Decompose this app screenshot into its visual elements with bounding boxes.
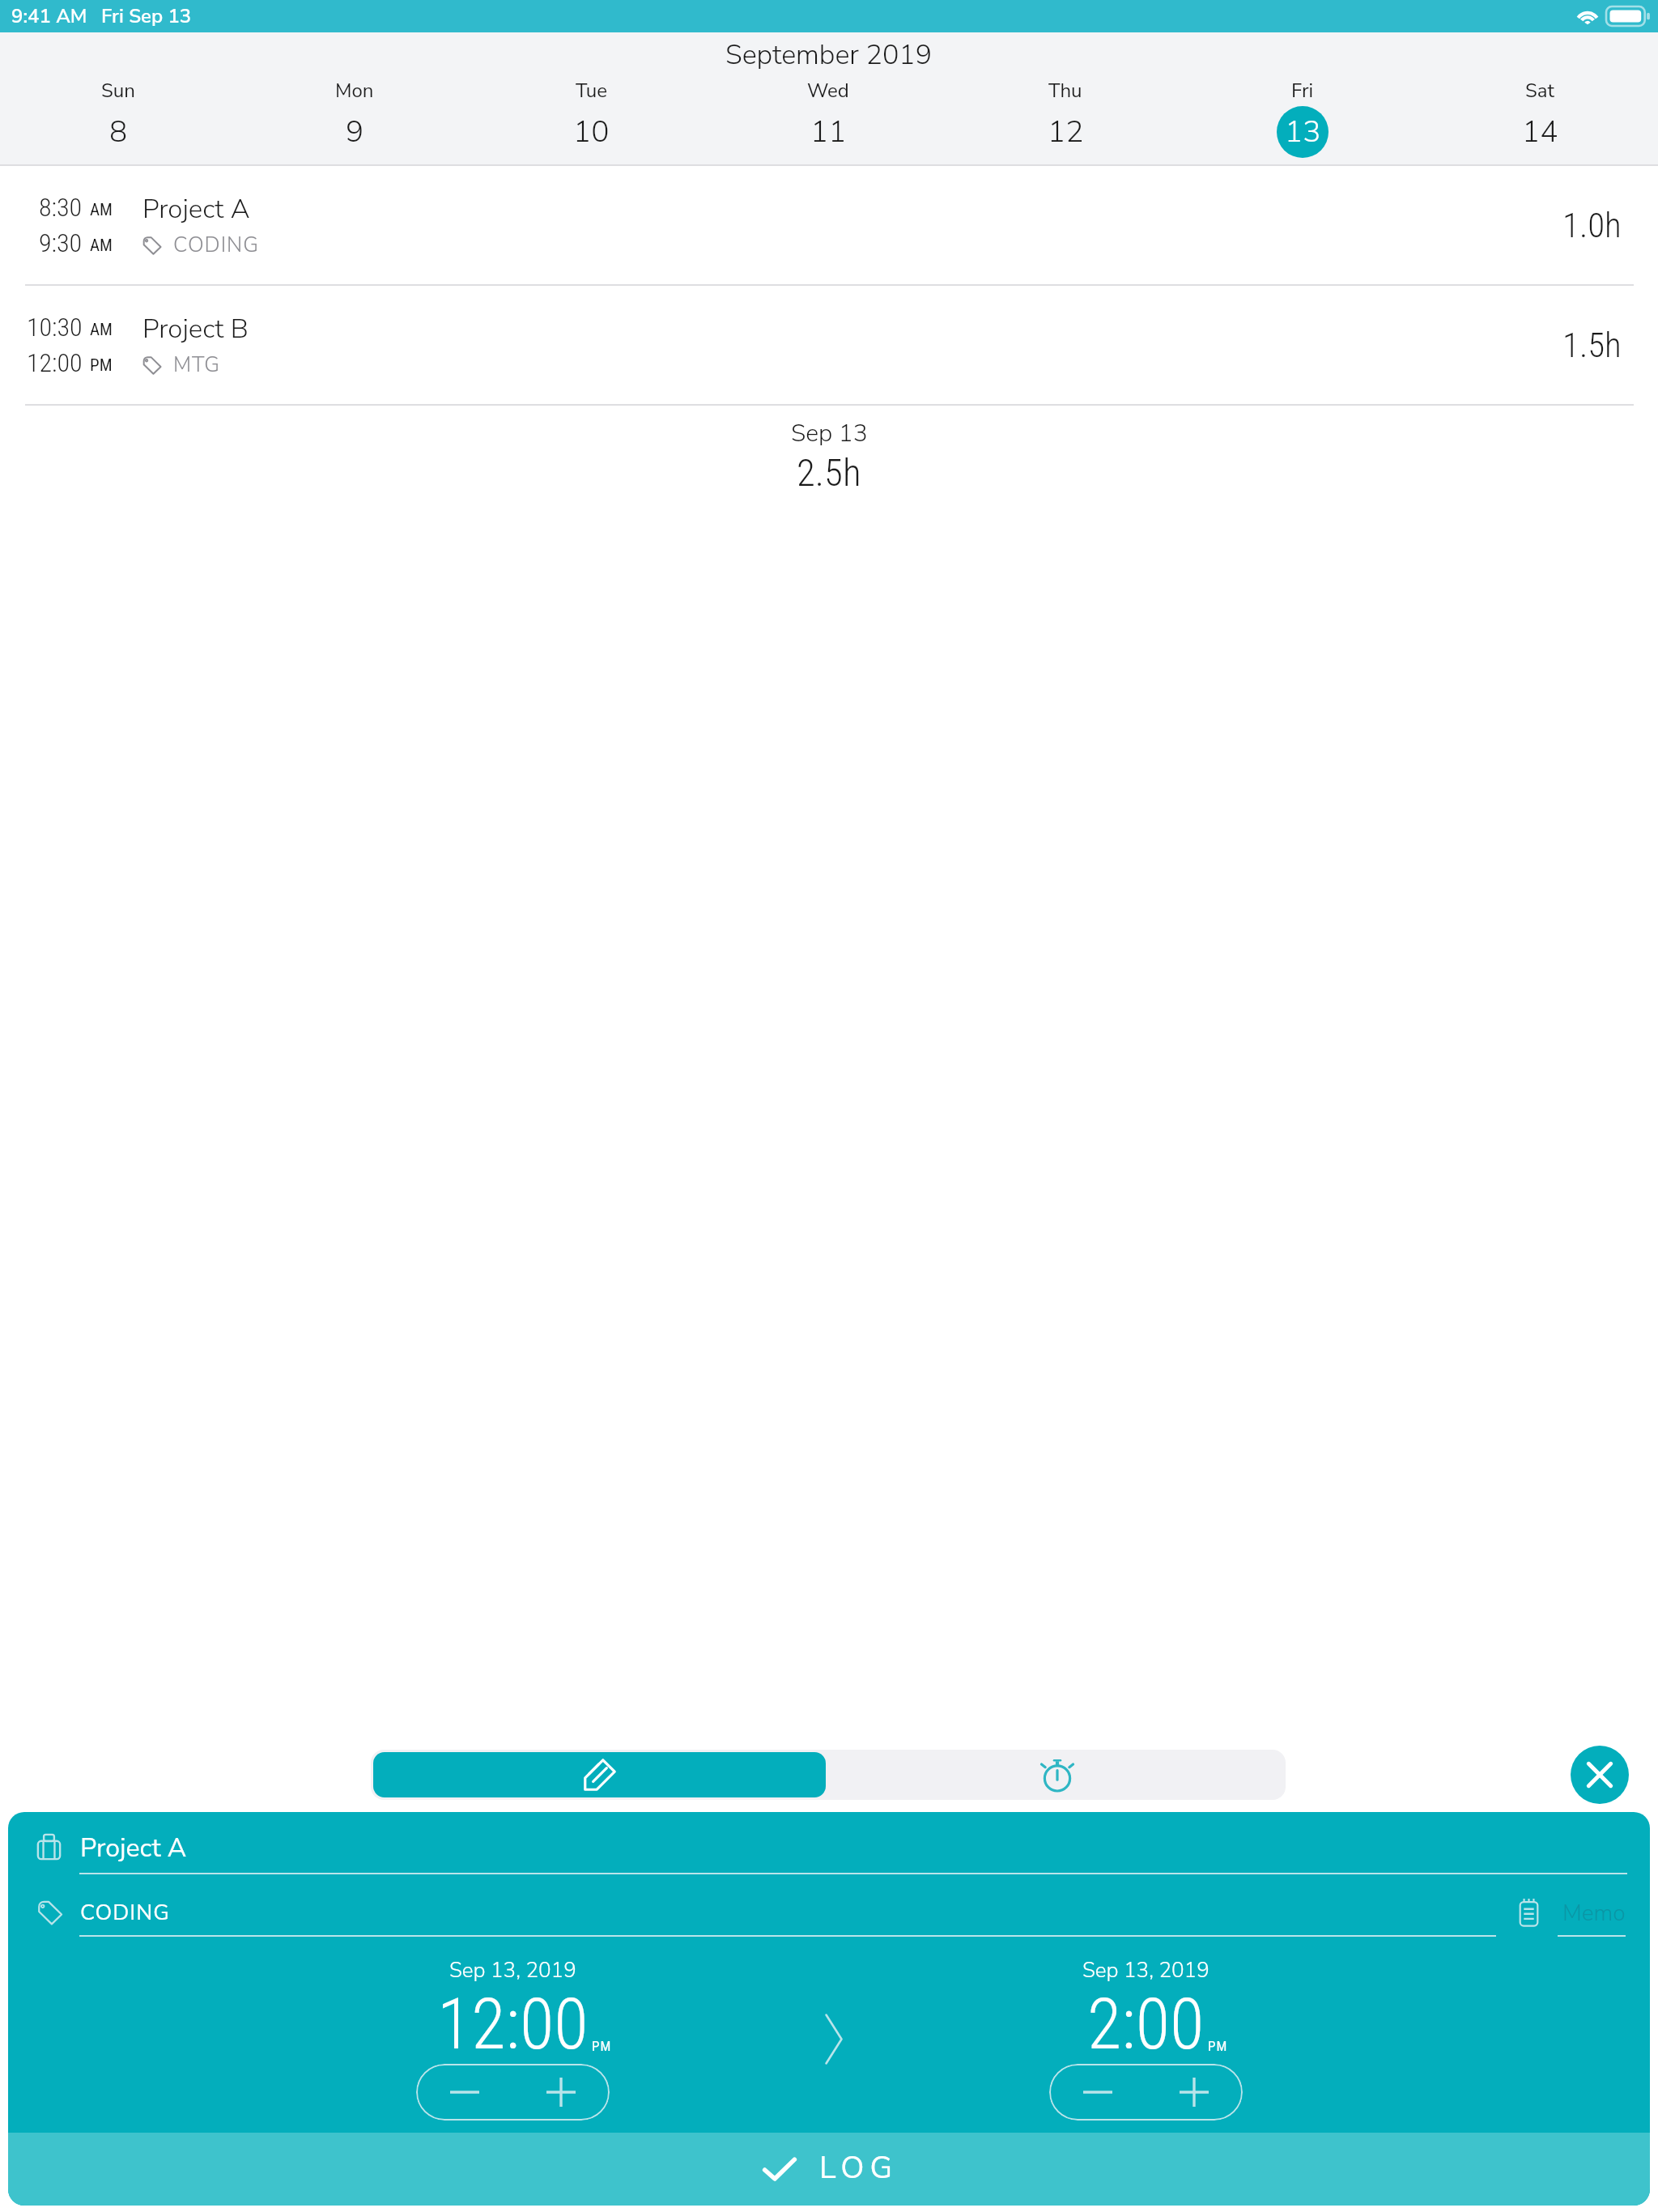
button[interactable]: Wed — [709, 78, 946, 158]
staticText: September 2019 — [725, 36, 933, 74]
button[interactable]: Decrease time — [1049, 2064, 1146, 2121]
staticText: Sep 13 — [791, 417, 868, 450]
staticText: Project A — [142, 191, 250, 228]
staticText: 10 — [573, 112, 610, 152]
staticText: PM — [1208, 2038, 1228, 2054]
button[interactable]: CODING — [37, 1874, 1518, 1937]
button[interactable]: Thu — [946, 78, 1184, 158]
button[interactable]: Project A — [37, 1812, 1627, 1874]
staticText: 8 — [109, 112, 128, 152]
staticText: 9:30 — [39, 228, 83, 258]
button[interactable]: Increase time — [1146, 2064, 1243, 2121]
button[interactable]: Close — [1571, 1746, 1629, 1804]
staticText: 9:41 AM — [11, 3, 87, 30]
staticText: 9 — [346, 112, 364, 152]
staticText: PM — [592, 2038, 612, 2054]
staticText: Project A — [80, 1831, 187, 1866]
staticText: Tue — [576, 78, 607, 104]
staticText: CODING — [173, 231, 259, 259]
staticText: Fri — [1291, 78, 1314, 104]
button[interactable]: Decrease time — [416, 2064, 512, 2121]
staticText: Sep 13, 2019 — [449, 1956, 576, 1984]
button[interactable]: Manual entry — [373, 1752, 826, 1797]
staticText: Thu — [1048, 78, 1082, 104]
staticText: PM — [90, 355, 113, 376]
staticText: Sep 13, 2019 — [1082, 1956, 1209, 1984]
staticText: Sat — [1525, 78, 1554, 104]
staticText: 14 — [1522, 112, 1558, 152]
button[interactable]: Memo — [1518, 1874, 1650, 1937]
staticText: AM — [90, 320, 113, 340]
staticText: Sun — [101, 78, 135, 104]
staticText: 1.5h — [1562, 325, 1622, 365]
staticText: 12:00 — [27, 347, 83, 378]
button[interactable]: Increase time — [512, 2064, 610, 2121]
staticText: 13 — [1285, 112, 1321, 152]
button[interactable]: Timer — [828, 1750, 1286, 1800]
staticText: Fri Sep 13 — [101, 3, 192, 30]
staticText: AM — [90, 200, 113, 220]
staticText: LOG — [819, 2147, 898, 2189]
staticText: 2:00 — [1087, 1983, 1205, 2065]
button[interactable]: Tue — [473, 78, 709, 158]
button[interactable]: 8:30 — [0, 166, 1658, 286]
staticText: CODING — [80, 1898, 170, 1928]
button[interactable]: 10:30 — [0, 286, 1658, 406]
staticText: Mon — [335, 78, 374, 104]
staticText: 11 — [810, 112, 847, 152]
staticText: Wed — [807, 78, 849, 104]
button[interactable]: Sun — [0, 78, 236, 158]
staticText: 12:00 — [437, 1983, 589, 2065]
staticText: AM — [90, 236, 113, 256]
staticText: Memo — [1562, 1898, 1626, 1929]
button[interactable]: LOG — [8, 2133, 1650, 2206]
staticText: Project B — [142, 311, 249, 347]
staticText: 12 — [1048, 112, 1084, 152]
staticText: 1.0h — [1562, 205, 1622, 245]
button[interactable]: Fri — [1184, 78, 1421, 158]
staticText: 10:30 — [27, 312, 83, 342]
staticText: 8:30 — [39, 192, 83, 223]
button[interactable]: Mon — [236, 78, 473, 158]
staticText: MTG — [173, 351, 221, 379]
staticText: 2.5h — [797, 450, 861, 495]
button[interactable]: Sat — [1421, 78, 1658, 158]
